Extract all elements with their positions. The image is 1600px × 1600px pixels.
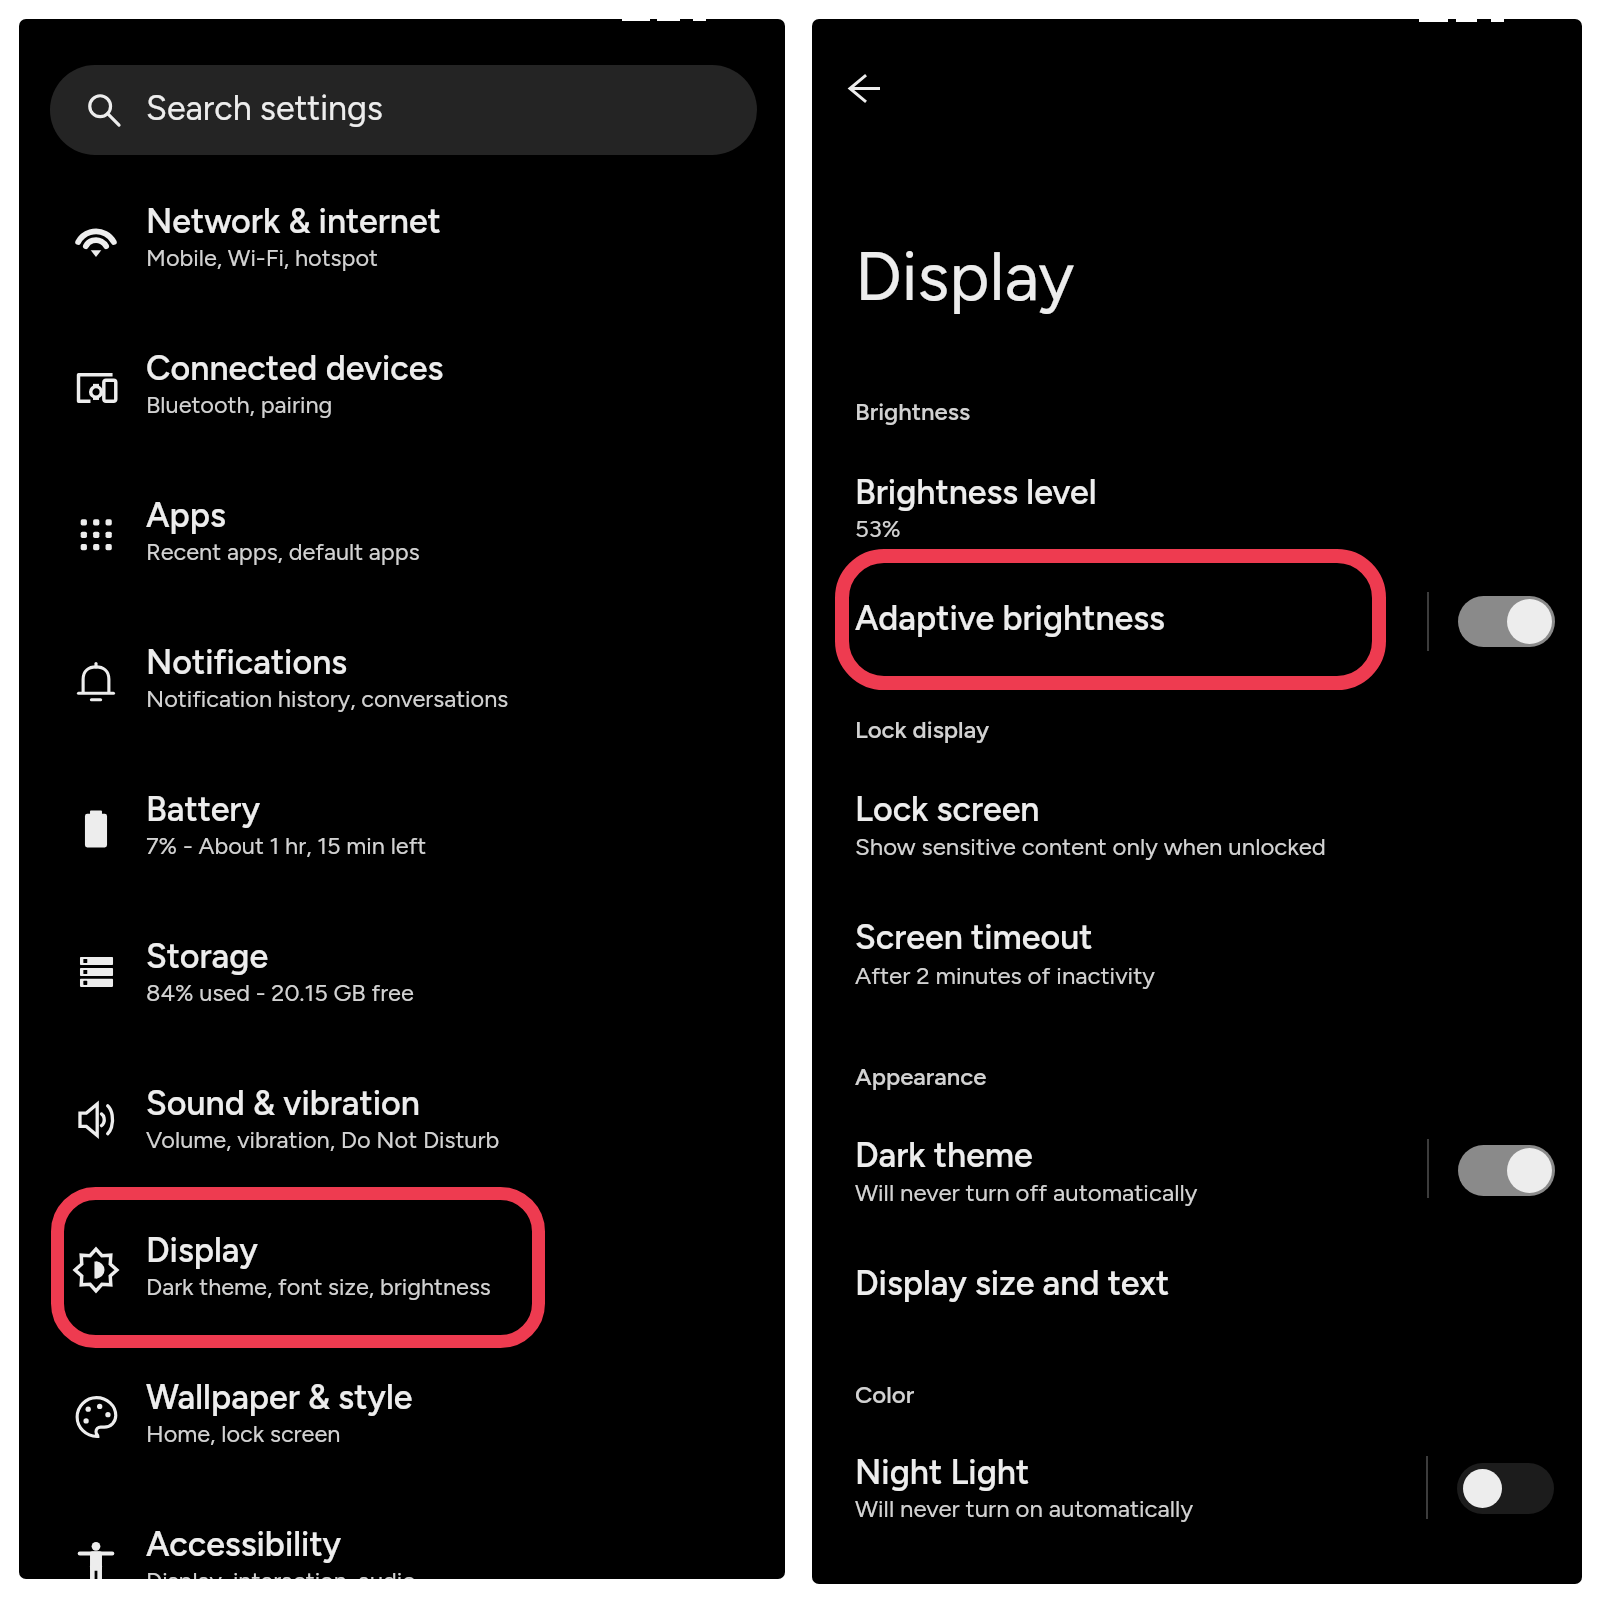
staticText: Bluetooth, pairing (146, 391, 333, 419)
button[interactable]: Network & internet (19, 166, 785, 294)
button[interactable]: Back (820, 44, 908, 132)
staticText: Lock display (855, 715, 990, 744)
staticText: Brightness (855, 397, 971, 426)
staticText: Will never turn off automatically (855, 1178, 1198, 1207)
staticText: Display, interaction, audio (146, 1567, 416, 1579)
button[interactable] (812, 569, 1582, 689)
staticText: 7% - About 1 hr, 15 min left (146, 832, 427, 860)
button[interactable]: Battery (19, 754, 785, 882)
button[interactable]: Display (19, 1195, 785, 1323)
button[interactable]: Sound & vibration (19, 1048, 785, 1176)
staticText: Volume, vibration, Do Not Disturb (146, 1126, 500, 1154)
staticText: Network & internet (146, 201, 441, 242)
staticText: Dark theme, font size, brightness (146, 1273, 491, 1301)
staticText: Accessibility (146, 1524, 342, 1565)
button[interactable]: Toggle off (1457, 1463, 1554, 1514)
button[interactable] (812, 1125, 1582, 1235)
staticText: Color (855, 1380, 915, 1409)
staticText: Wallpaper & style (146, 1377, 413, 1418)
staticText: Notifications (146, 642, 348, 683)
staticText: Search settings (146, 88, 383, 129)
staticText: Adaptive brightness (855, 598, 1165, 639)
button[interactable] (812, 1251, 1582, 1341)
staticText: After 2 minutes of inactivity (855, 961, 1155, 990)
button[interactable]: Storage (19, 901, 785, 1029)
button[interactable]: Notifications (19, 607, 785, 735)
staticText: Notification history, conversations (146, 685, 509, 713)
staticText: Will never turn on automatically (855, 1494, 1194, 1523)
staticText: Display (146, 1230, 258, 1271)
staticText: Display size and text (855, 1263, 1170, 1304)
staticText: Show sensitive content only when unlocke… (855, 832, 1326, 861)
staticText: Dark theme (855, 1135, 1033, 1176)
staticText: 84% used - 20.15 GB free (146, 979, 414, 1007)
staticText: Recent apps, default apps (146, 538, 420, 566)
button[interactable]: Search settings (50, 65, 757, 155)
button[interactable]: Wallpaper & style (19, 1342, 785, 1470)
staticText: Mobile, Wi-Fi, hotspot (146, 244, 378, 272)
button[interactable]: Toggle on (1458, 596, 1555, 647)
staticText: Appearance (855, 1062, 987, 1091)
button[interactable]: Connected devices (19, 313, 785, 441)
button[interactable]: Accessibility (19, 1489, 785, 1579)
staticText: Apps (146, 495, 226, 536)
button[interactable] (812, 1444, 1582, 1554)
button[interactable] (812, 779, 1582, 889)
staticText: 53% (855, 514, 901, 543)
staticText: Lock screen (855, 789, 1040, 830)
button[interactable] (812, 907, 1582, 1017)
staticText: Battery (146, 789, 260, 830)
staticText: Home, lock screen (146, 1420, 341, 1448)
staticText: Display (855, 235, 1075, 317)
button[interactable] (812, 459, 1582, 569)
staticText: Connected devices (146, 348, 444, 389)
button[interactable]: Apps (19, 460, 785, 588)
staticText: Sound & vibration (146, 1083, 420, 1124)
staticText: Storage (146, 936, 269, 977)
staticText: Night Light (855, 1452, 1030, 1493)
button[interactable]: Toggle on (1458, 1145, 1555, 1196)
staticText: Screen timeout (855, 917, 1093, 958)
staticText: Brightness level (855, 472, 1097, 513)
